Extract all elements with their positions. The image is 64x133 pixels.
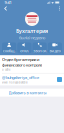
staticText: о себе xyxy=(2,68,10,71)
staticText: сообщ. xyxy=(3,48,16,53)
staticText: откл. xyxy=(20,48,29,53)
button[interactable]: сообщ. xyxy=(2,42,16,53)
button[interactable]: Отдел бухгалтерии и финансового контроля xyxy=(0,55,64,73)
staticText: был(а) недавно xyxy=(19,35,45,40)
button[interactable]: Back xyxy=(2,4,9,13)
staticText: Добавить в контакты xyxy=(9,90,47,95)
button[interactable]: видео xyxy=(48,42,62,53)
button[interactable]: @buhgalteriya_office xyxy=(0,73,64,86)
staticText: 9:41 xyxy=(4,0,11,5)
staticText: имя пользователя xyxy=(2,81,28,84)
button[interactable]: More xyxy=(57,5,62,12)
staticText: видео xyxy=(49,48,60,53)
staticText: @buhgalteriya_office xyxy=(2,75,39,80)
staticText: звонок xyxy=(33,48,46,53)
button[interactable]: звонок xyxy=(32,42,47,53)
staticText: Отдел бухгалтерии и финансового контроля xyxy=(2,57,42,67)
staticText: Бухгалтерия xyxy=(16,27,48,35)
button[interactable]: Добавить в контакты xyxy=(0,89,64,97)
button[interactable]: откл. xyxy=(17,42,31,53)
